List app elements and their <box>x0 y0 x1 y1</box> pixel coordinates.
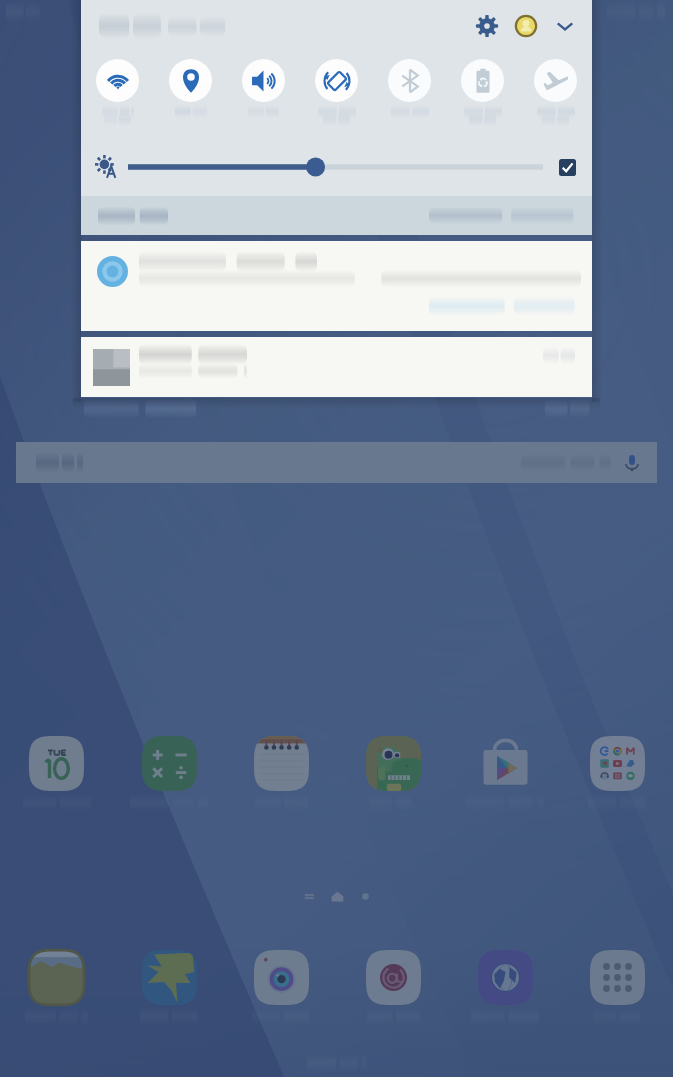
button[interactable] <box>0 950 113 1021</box>
button[interactable] <box>337 736 449 807</box>
button[interactable] <box>449 736 561 807</box>
button[interactable] <box>154 59 227 115</box>
button[interactable]: Brightness slider <box>128 160 543 174</box>
button[interactable]: Auto brightness <box>94 154 120 180</box>
button[interactable] <box>81 337 592 397</box>
button[interactable] <box>227 59 300 115</box>
button[interactable] <box>81 59 154 123</box>
button[interactable]: User profile <box>513 13 539 39</box>
button[interactable] <box>561 950 673 1021</box>
button[interactable] <box>449 950 561 1021</box>
button[interactable] <box>113 736 225 807</box>
button[interactable]: Expand <box>552 13 578 39</box>
button[interactable] <box>225 950 337 1021</box>
button[interactable]: Auto brightness toggle <box>559 159 576 176</box>
button[interactable] <box>337 950 449 1021</box>
button[interactable] <box>561 736 673 807</box>
button[interactable]: Voice search <box>16 442 657 483</box>
button[interactable] <box>446 59 519 123</box>
button[interactable]: Settings <box>474 13 500 39</box>
button[interactable] <box>373 59 446 115</box>
button[interactable] <box>113 950 225 1021</box>
button[interactable]: Home page <box>328 887 346 905</box>
button[interactable] <box>81 196 592 235</box>
other: Voice search <box>623 454 641 472</box>
button[interactable]: Next page <box>357 888 373 904</box>
button[interactable] <box>0 736 113 807</box>
button[interactable]: Previous page <box>301 888 317 904</box>
button[interactable] <box>81 241 592 331</box>
button[interactable] <box>300 59 373 123</box>
button[interactable] <box>519 59 592 123</box>
button[interactable] <box>225 736 337 807</box>
